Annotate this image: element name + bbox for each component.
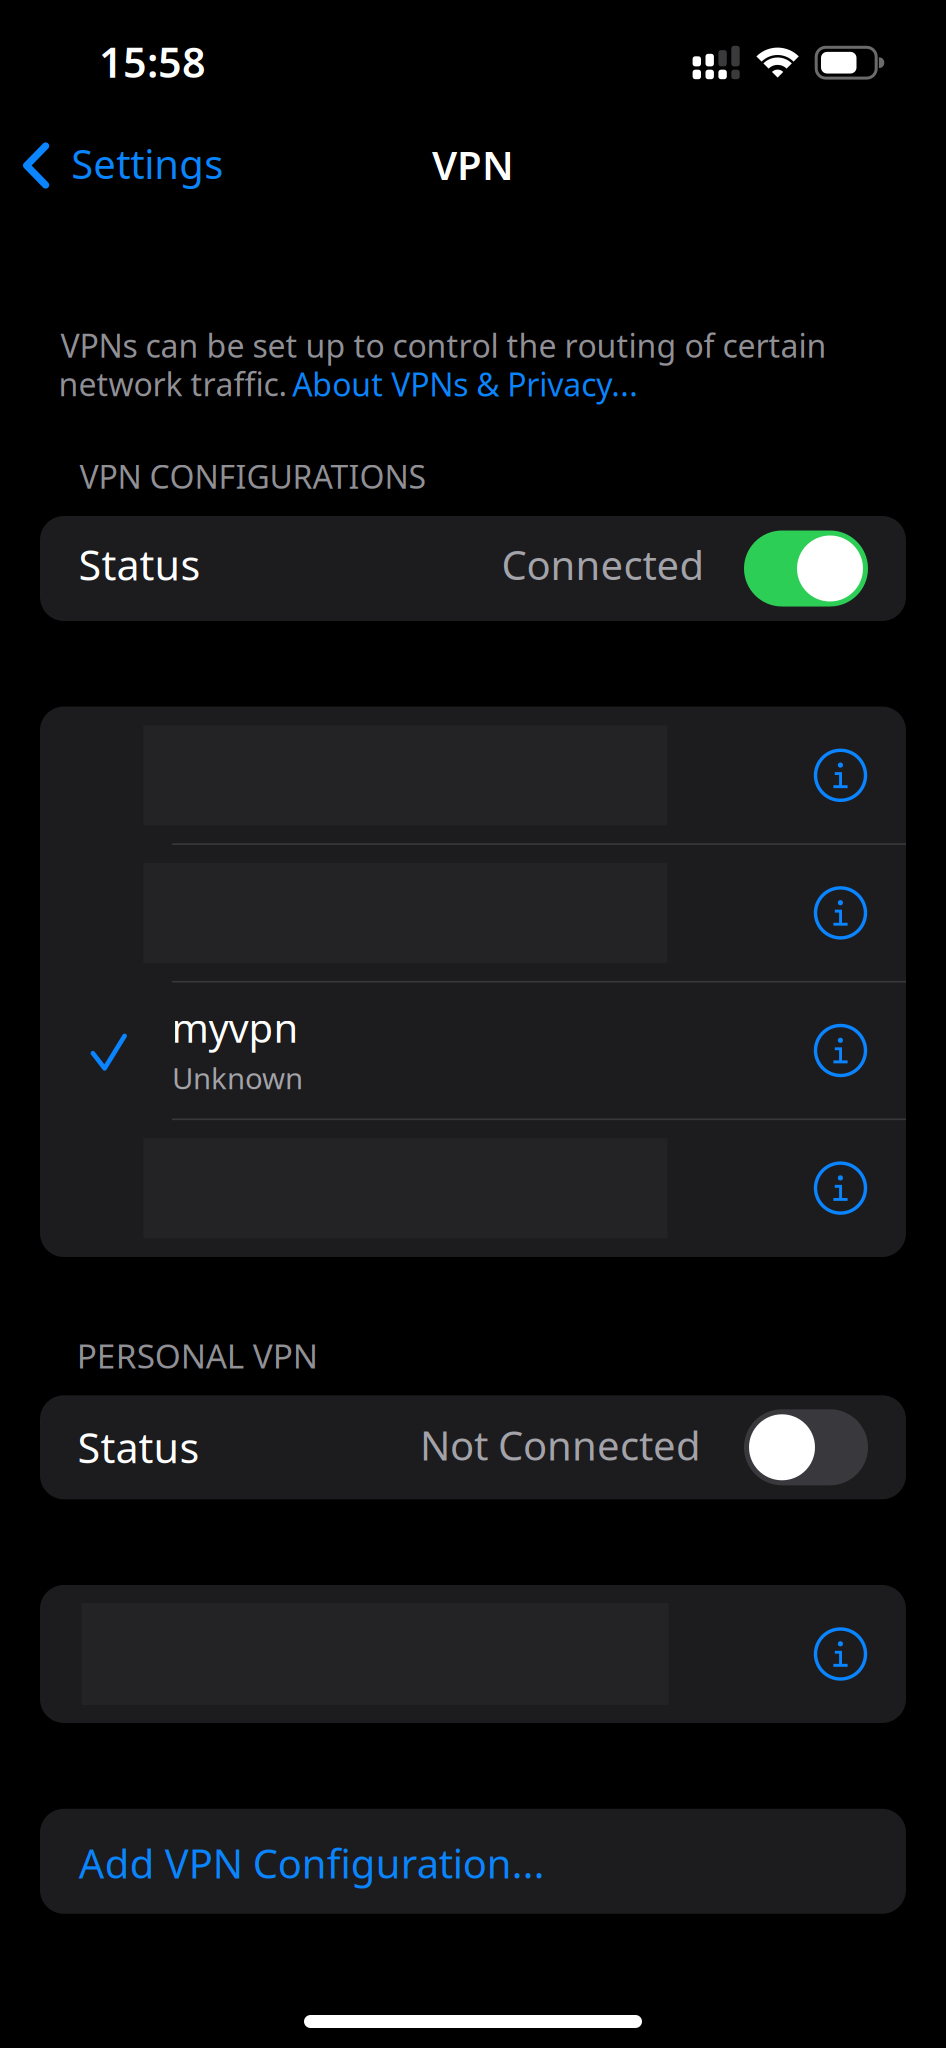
button[interactable]: More info xyxy=(803,876,877,950)
button[interactable]: myvpn xyxy=(40,982,780,1119)
button[interactable]: About VPNs & Privacy... xyxy=(292,362,638,406)
button[interactable]: Personal VPN status xyxy=(744,1409,868,1485)
button[interactable]: More info xyxy=(803,1013,877,1087)
staticText: Settings xyxy=(71,137,223,190)
staticText: Status xyxy=(78,1420,200,1475)
staticText: VPN CONFIGURATIONS xyxy=(79,455,426,497)
button[interactable]: Settings xyxy=(0,132,262,198)
staticText: myvpn xyxy=(171,1001,298,1054)
button[interactable]: More info xyxy=(803,1617,877,1691)
button[interactable]: More info xyxy=(803,738,877,812)
staticText: 15:58 xyxy=(99,34,206,89)
staticText: VPNs can be set up to control the routin… xyxy=(61,324,827,367)
button[interactable]: VPN configuration xyxy=(40,706,906,844)
staticText: Not Connected xyxy=(420,1418,701,1471)
button[interactable]: Add VPN Configuration... xyxy=(79,1810,906,1915)
button[interactable]: VPN status xyxy=(744,530,868,606)
staticText: Add VPN Configuration... xyxy=(79,1836,545,1889)
button[interactable]: Personal VPN configuration xyxy=(40,1585,866,1723)
staticText: network traffic. xyxy=(59,363,288,405)
staticText: VPN xyxy=(432,138,514,191)
button[interactable]: More info xyxy=(803,1151,877,1225)
staticText: PERSONAL VPN xyxy=(77,1333,318,1378)
button[interactable]: VPN configuration xyxy=(40,1119,906,1257)
staticText: Status xyxy=(79,537,201,592)
staticText: Unknown xyxy=(172,1058,303,1097)
staticText: Connected xyxy=(501,538,704,591)
button[interactable]: VPN configuration xyxy=(40,844,906,982)
staticText: About VPNs & Privacy... xyxy=(292,363,638,405)
